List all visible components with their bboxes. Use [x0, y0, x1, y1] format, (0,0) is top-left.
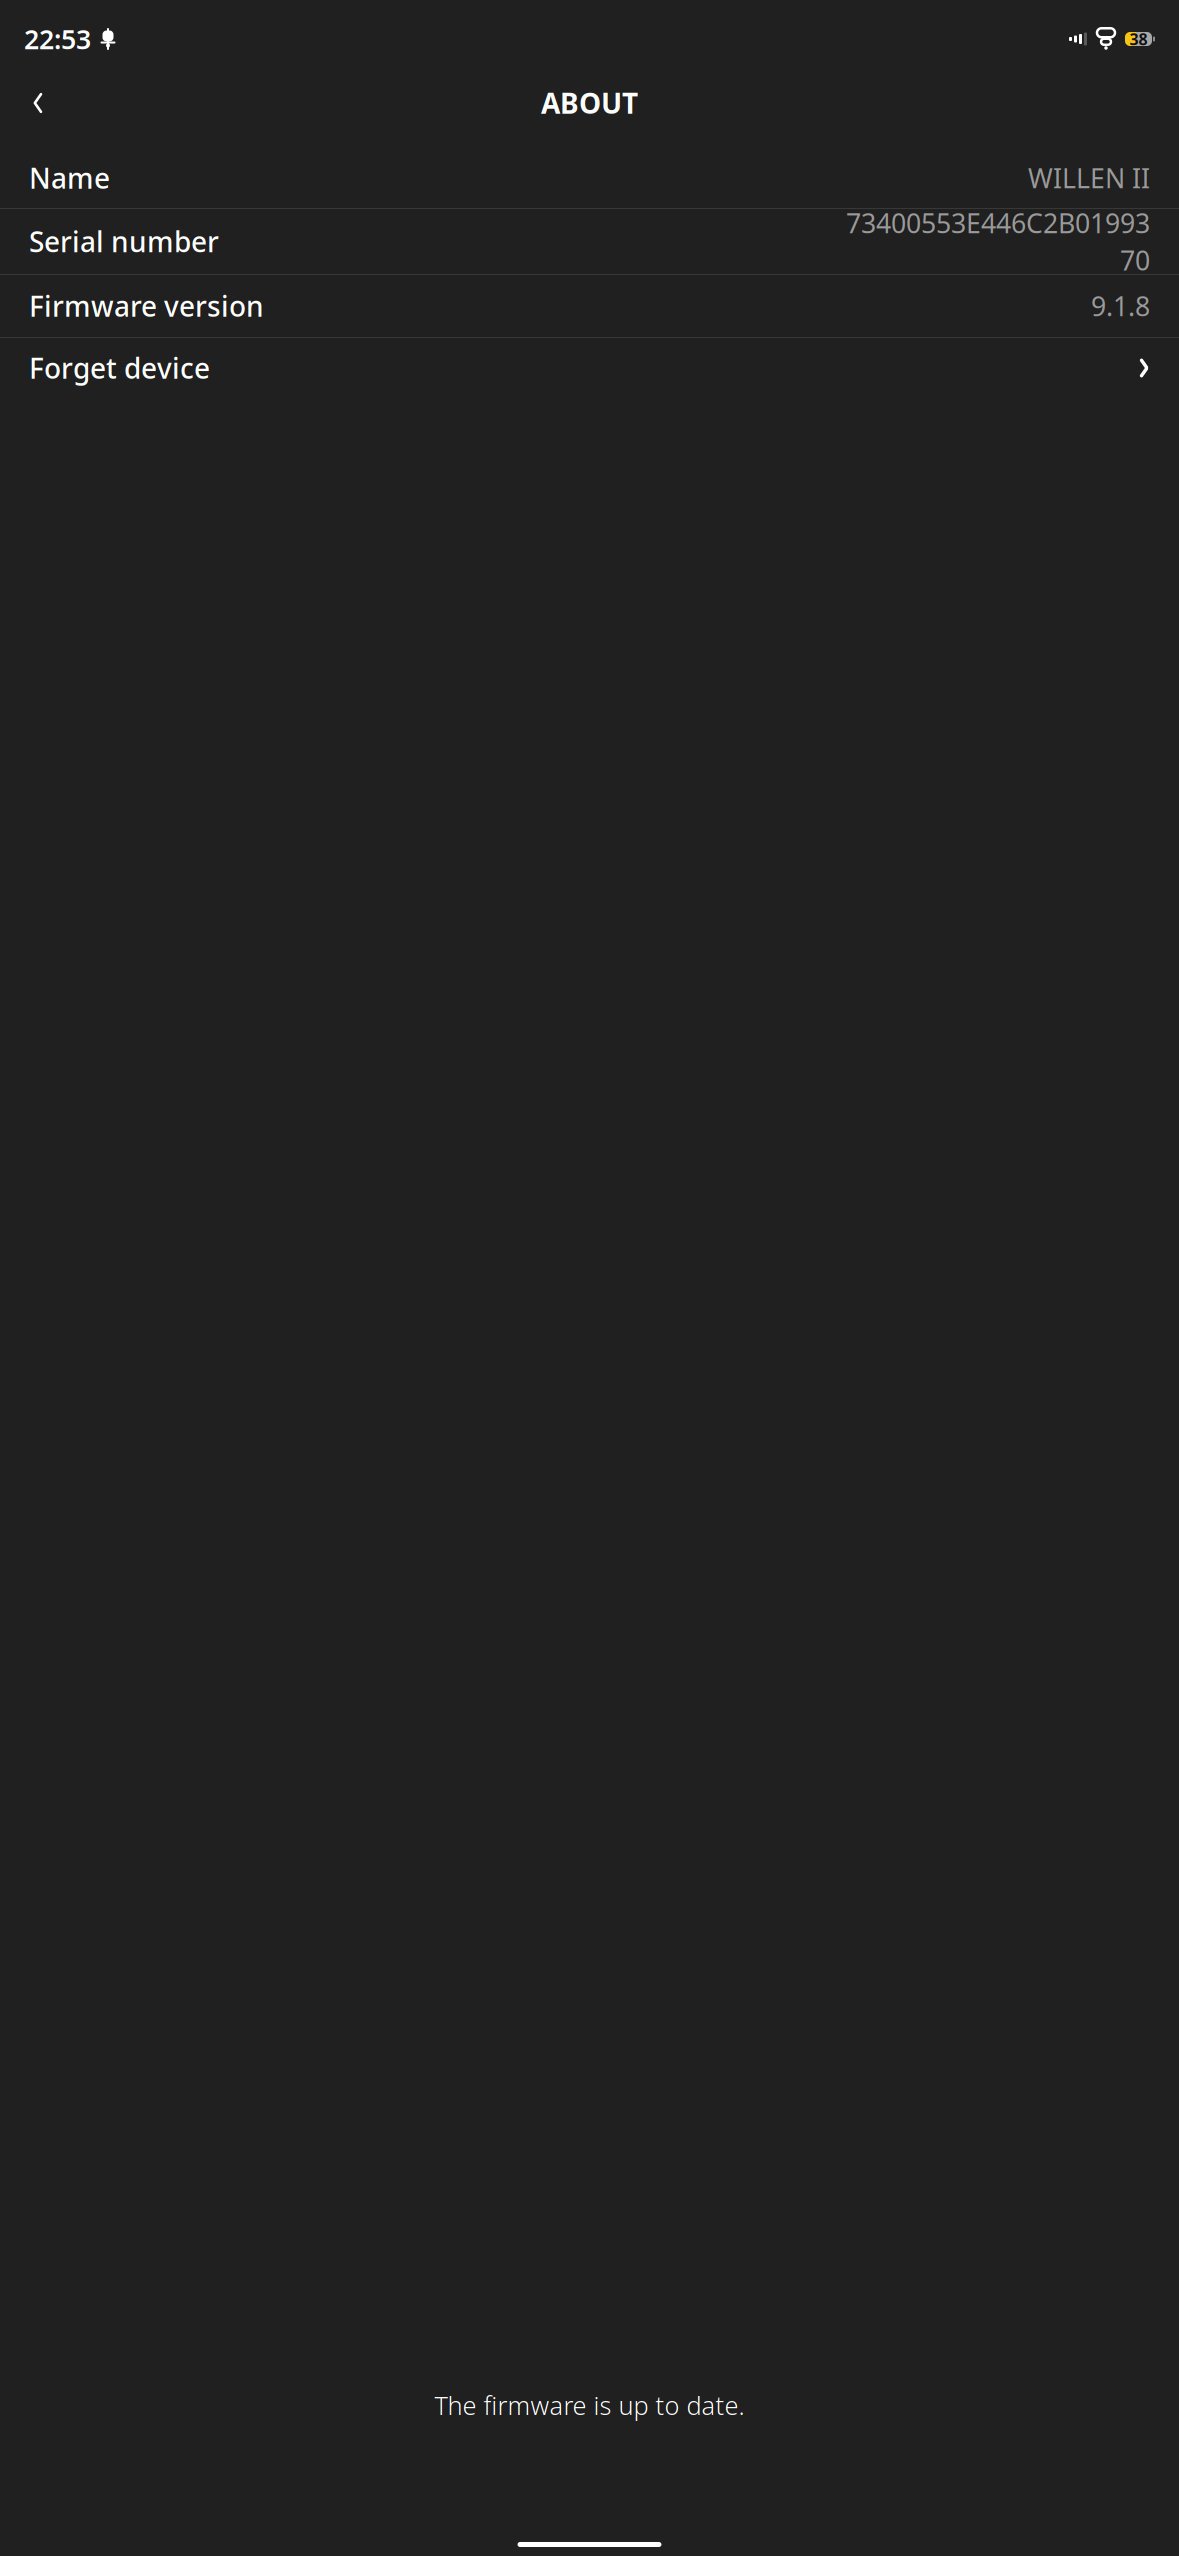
staticText: Firmware version — [29, 287, 264, 325]
button[interactable]: Firmware version — [0, 275, 1179, 337]
button[interactable]: Back — [12, 77, 64, 129]
staticText: The firmware is up to date. — [434, 2388, 744, 2422]
button[interactable]: Serial number — [0, 209, 1179, 274]
staticText: WILLEN II — [1028, 160, 1150, 196]
staticText: 9.1.8 — [1091, 288, 1150, 324]
staticText: 38 — [1129, 28, 1147, 50]
staticText: 22:53 — [24, 21, 91, 57]
staticText: Name — [29, 159, 110, 197]
button[interactable]: Name — [0, 148, 1179, 208]
staticText: Serial number — [29, 223, 219, 260]
staticText: ABOUT — [541, 84, 638, 122]
button[interactable]: Forget device — [0, 338, 1179, 398]
staticText: 70 — [1120, 242, 1150, 278]
staticText: 73400553E446C2B01993 — [846, 205, 1150, 240]
staticText: Forget device — [29, 349, 210, 387]
